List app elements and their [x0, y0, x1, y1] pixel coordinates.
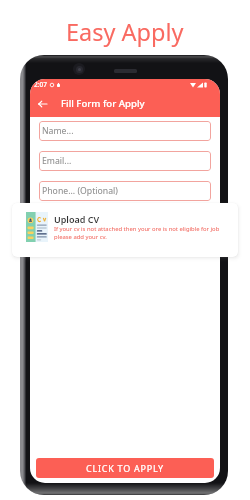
staticText: Name...: [42, 125, 74, 137]
button[interactable]: CLICK TO APPLY: [36, 458, 214, 478]
staticText: Upload CV: [54, 213, 100, 225]
button[interactable]: Upload CV: [12, 203, 238, 257]
button[interactable]: Back: [34, 96, 50, 112]
staticText: CLICK TO APPLY: [86, 462, 164, 474]
button[interactable]: Email...: [39, 151, 211, 171]
staticText: If your cv is not attached then your ore…: [54, 225, 229, 241]
button[interactable]: Phone... (Optional): [39, 181, 211, 201]
staticText: Phone... (Optional): [42, 185, 118, 197]
button[interactable]: Name...: [39, 121, 211, 141]
staticText: Fill Form for Apply: [61, 97, 145, 110]
staticText: Easy Apply: [66, 16, 184, 48]
staticText: 2:07: [34, 80, 47, 89]
staticText: Email...: [42, 155, 72, 167]
